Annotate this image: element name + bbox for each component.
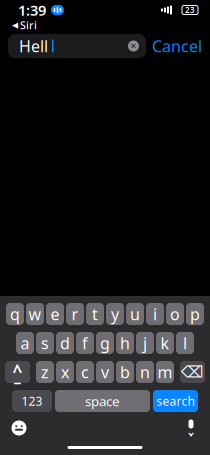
button[interactable]: 􀊫 bbox=[8, 34, 146, 58]
staticText: 23 bbox=[185, 5, 195, 15]
button[interactable]: a bbox=[16, 332, 34, 354]
button[interactable]: Delete bbox=[180, 361, 205, 383]
staticText: c bbox=[81, 361, 89, 383]
button[interactable]: f bbox=[76, 332, 94, 354]
button[interactable]: m bbox=[156, 361, 174, 383]
button[interactable]: l bbox=[176, 332, 194, 354]
staticText: ⌄ bbox=[186, 425, 196, 438]
button[interactable]: s bbox=[36, 332, 54, 354]
staticText: y bbox=[111, 303, 119, 325]
button[interactable]: x bbox=[56, 361, 74, 383]
button[interactable]: v bbox=[96, 361, 114, 383]
staticText: s bbox=[41, 332, 49, 354]
staticText: ✕ bbox=[130, 41, 137, 51]
button[interactable]: d bbox=[56, 332, 74, 354]
button[interactable]: b bbox=[116, 361, 134, 383]
staticText: f bbox=[82, 332, 88, 354]
button[interactable]: search bbox=[153, 390, 198, 412]
staticText: z bbox=[41, 361, 49, 383]
button[interactable]: Cancel bbox=[152, 35, 202, 57]
staticText: x bbox=[61, 361, 69, 383]
staticText: b bbox=[120, 361, 130, 383]
staticText: q bbox=[10, 303, 20, 325]
staticText: Cancel bbox=[152, 35, 202, 57]
button[interactable]: c bbox=[76, 361, 94, 383]
staticText: l bbox=[183, 332, 187, 354]
button[interactable]: u bbox=[126, 303, 144, 325]
button[interactable]: p bbox=[186, 303, 204, 325]
button[interactable]: h bbox=[116, 332, 134, 354]
staticText: ⌫ bbox=[181, 363, 204, 381]
staticText: ◀ bbox=[12, 20, 18, 30]
button[interactable]: o bbox=[166, 303, 184, 325]
staticText: 1:39 bbox=[18, 0, 46, 20]
button[interactable]: q bbox=[6, 303, 24, 325]
staticText: w bbox=[28, 303, 41, 325]
button[interactable]: z bbox=[36, 361, 54, 383]
staticText: Siri bbox=[20, 18, 37, 32]
button[interactable]: k bbox=[156, 332, 174, 354]
staticText: g bbox=[100, 332, 110, 354]
staticText: o bbox=[170, 303, 180, 325]
button[interactable]: n bbox=[136, 361, 154, 383]
staticText: e bbox=[50, 303, 59, 325]
button[interactable]: y bbox=[106, 303, 124, 325]
staticText: search bbox=[156, 393, 194, 409]
staticText: p bbox=[190, 303, 200, 325]
button[interactable]: g bbox=[96, 332, 114, 354]
staticText: m bbox=[157, 361, 172, 383]
button[interactable]: e bbox=[46, 303, 64, 325]
staticText: j bbox=[143, 332, 147, 354]
button[interactable]: Shift bbox=[5, 361, 30, 383]
button[interactable]: Dictate bbox=[182, 419, 200, 437]
staticText: 123 bbox=[21, 393, 42, 409]
button[interactable]: space bbox=[55, 390, 150, 412]
staticText: u bbox=[130, 303, 140, 325]
button[interactable]: Emoji bbox=[10, 419, 28, 437]
button[interactable]: i bbox=[146, 303, 164, 325]
staticText: t bbox=[92, 303, 98, 325]
staticText: n bbox=[140, 361, 150, 383]
button[interactable]: w bbox=[26, 303, 44, 325]
staticText: k bbox=[160, 332, 169, 354]
staticText: i bbox=[153, 303, 157, 325]
button[interactable]: j bbox=[136, 332, 154, 354]
button[interactable]: t bbox=[86, 303, 104, 325]
button[interactable]: 123 bbox=[12, 390, 52, 412]
staticText: h bbox=[120, 332, 130, 354]
staticText: v bbox=[101, 361, 109, 383]
button[interactable]: r bbox=[66, 303, 84, 325]
staticText: Hell bbox=[19, 35, 48, 57]
staticText: space bbox=[85, 392, 120, 410]
staticText: r bbox=[71, 303, 78, 325]
staticText: a bbox=[20, 332, 29, 354]
staticText: d bbox=[60, 332, 70, 354]
staticText: ^ bbox=[12, 360, 22, 383]
